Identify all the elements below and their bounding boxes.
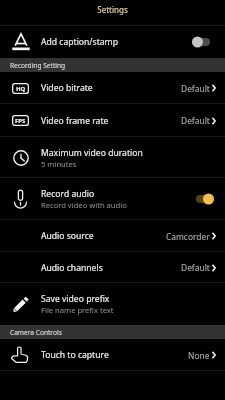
button[interactable]: Audio channels (0, 252, 225, 283)
staticText: Camera Controls (10, 328, 62, 337)
button[interactable]: Record audio (0, 178, 225, 220)
staticText: Record video with audio (41, 200, 127, 210)
staticText: HQ (16, 85, 26, 93)
staticText: Audio channels (41, 262, 103, 274)
other: More (212, 85, 216, 91)
staticText: Recording Setting (10, 61, 66, 70)
other: Toggle on (196, 193, 214, 205)
staticText: None (188, 350, 210, 361)
staticText: Default (181, 115, 210, 126)
button[interactable]: FPS (0, 104, 225, 137)
other: More (212, 118, 216, 124)
staticText: Default (181, 262, 210, 273)
other: More (212, 233, 216, 239)
staticText: Audio source (41, 230, 94, 242)
staticText: Settings (97, 4, 128, 15)
staticText: File name prefix text (41, 305, 114, 315)
button[interactable]: Save video prefix (0, 283, 225, 325)
staticText: Touch to capture (41, 349, 109, 361)
button[interactable]: HQ (0, 72, 225, 104)
staticText: Record audio (41, 188, 95, 200)
staticText: Save video prefix (41, 293, 110, 305)
staticText: 5 minutes (41, 159, 77, 169)
button[interactable]: Audio source (0, 220, 225, 252)
staticText: Add caption/stamp (41, 36, 118, 48)
staticText: Default (181, 83, 210, 94)
staticText: Video frame rate (41, 115, 109, 127)
button[interactable]: Maximum video duration (0, 137, 225, 178)
other: More (212, 352, 216, 358)
button[interactable]: Touch to capture (0, 339, 225, 371)
other: Toggle off (192, 36, 210, 48)
button[interactable]: Add caption/stamp (0, 26, 225, 58)
staticText: FPS (15, 117, 26, 125)
staticText: Camcorder (166, 231, 210, 242)
other: More (212, 265, 216, 271)
staticText: Video bitrate (41, 82, 93, 94)
staticText: Maximum video duration (41, 147, 143, 159)
